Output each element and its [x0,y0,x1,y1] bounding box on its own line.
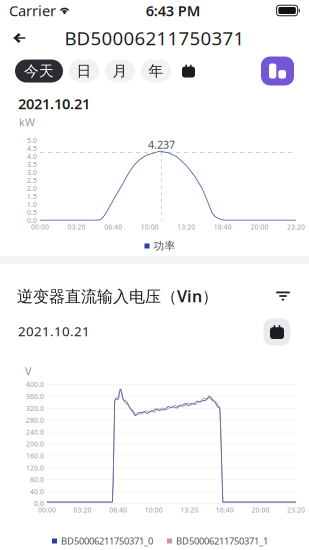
button[interactable]: 年 [141,59,171,82]
button[interactable]: Filter [270,283,296,309]
staticText: 16:40 [216,506,234,514]
staticText: 23:20 [287,506,305,514]
staticText: 120.0 [26,463,44,472]
staticText: 320.0 [26,404,44,413]
staticText: V [25,364,31,378]
button[interactable]: Choose date [177,59,200,82]
staticText: 16:40 [214,223,232,231]
button[interactable]: Back [0,22,38,54]
button[interactable]: Device layout [261,56,294,85]
button[interactable]: 日 [69,59,99,82]
staticText: 280.0 [26,416,44,425]
staticText: 40.0 [30,487,44,496]
staticText: 1.5 [27,192,37,201]
staticText: 200.0 [26,440,44,448]
staticText: 20:00 [251,506,269,514]
staticText: 06:40 [109,506,127,514]
staticText: BD50006211750371_1 [176,535,268,547]
staticText: 240.0 [26,428,44,437]
staticText: 功率 [153,239,175,252]
staticText: 400.0 [26,380,44,389]
staticText: 0.0 [27,216,37,225]
staticText: 2021.10.21 [18,94,90,113]
staticText: 3.5 [27,160,37,169]
staticText: 06:40 [104,223,122,231]
staticText: 1.0 [27,200,37,209]
staticText: 年 [148,62,163,80]
staticText: 20:00 [250,223,268,231]
staticText: 03:20 [68,223,86,231]
staticText: 360.0 [26,392,44,401]
staticText: 0.0 [34,499,44,508]
staticText: BD50006211750371_0 [61,535,153,547]
staticText: 3.0 [27,168,37,177]
staticText: 0.5 [27,208,37,217]
staticText: kW [19,115,35,129]
staticText: 逆变器直流输入电压（Vin） [17,285,218,307]
staticText: 10:00 [145,506,163,514]
staticText: 2021.10.21 [18,322,90,340]
staticText: 10:00 [141,223,159,231]
staticText: 23:20 [287,223,305,231]
staticText: 6:43 PM [146,1,201,20]
staticText: 00:00 [31,223,49,231]
staticText: 日 [76,62,91,80]
button[interactable]: 今天 [15,59,63,82]
staticText: Carrier [9,1,56,20]
staticText: 03:20 [74,506,92,514]
staticText: 4.0 [27,152,37,161]
staticText: 00:00 [38,506,56,514]
staticText: 今天 [24,62,54,80]
staticText: 80.0 [30,475,44,484]
staticText: 月 [112,62,127,80]
staticText: 2.5 [27,176,37,185]
staticText: 4.5 [27,144,37,153]
staticText: 160.0 [26,451,44,460]
staticText: 4.237 [148,138,175,152]
staticText: 13:20 [180,506,198,514]
staticText: BD50006211750371 [64,26,244,50]
staticText: 2.0 [27,184,37,193]
button[interactable]: 月 [105,59,135,82]
staticText: 5.0 [27,136,37,145]
button[interactable]: Choose date [263,318,290,345]
staticText: 13:20 [177,223,195,231]
